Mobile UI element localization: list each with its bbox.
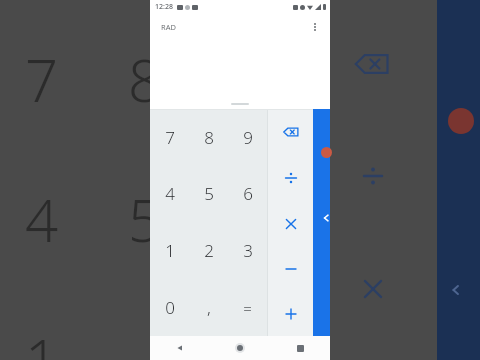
button[interactable]: , <box>189 279 228 336</box>
button[interactable]: Divide <box>268 155 313 201</box>
staticText: 8 <box>204 126 214 149</box>
staticText: 12:28 <box>155 2 173 12</box>
button[interactable]: 5 <box>189 165 228 222</box>
button[interactable]: 0 <box>150 279 189 336</box>
button[interactable]: 3 <box>228 222 267 279</box>
button[interactable]: Multiply <box>268 201 313 246</box>
button[interactable]: 1 <box>150 222 189 279</box>
staticText: RAD <box>161 22 176 32</box>
button[interactable]: Plus <box>268 291 313 336</box>
button[interactable]: RAD <box>158 19 179 35</box>
button[interactable]: 7 <box>150 109 189 165</box>
button[interactable]: 9 <box>228 109 267 165</box>
staticText: 2 <box>204 239 214 262</box>
button[interactable]: = <box>228 279 267 336</box>
staticText: 5 <box>128 180 162 259</box>
button[interactable]: 6 <box>228 165 267 222</box>
button[interactable]: 4 <box>150 165 189 222</box>
button[interactable]: Home <box>210 336 270 360</box>
staticText: 7 <box>165 126 175 149</box>
staticText: 5 <box>204 182 214 205</box>
button[interactable]: Delete <box>268 109 313 155</box>
staticText: 1 <box>165 239 175 262</box>
button[interactable]: Recents <box>270 336 330 360</box>
button[interactable]: Minus <box>268 246 313 291</box>
staticText: 4 <box>165 182 175 205</box>
staticText: 6 <box>243 182 253 205</box>
staticText: 1 <box>25 320 59 360</box>
staticText: 3 <box>243 239 253 262</box>
staticText: = <box>243 298 252 318</box>
staticText: 0 <box>165 296 175 319</box>
staticText: 8 <box>128 40 162 119</box>
button[interactable]: 2 <box>189 222 228 279</box>
staticText: 9 <box>243 126 253 149</box>
button[interactable]: More options <box>306 18 324 36</box>
staticText: 4 <box>25 180 59 259</box>
staticText: 7 <box>25 40 59 119</box>
button[interactable]: 8 <box>189 109 228 165</box>
staticText: , <box>207 296 211 319</box>
button[interactable]: Back <box>150 336 210 360</box>
